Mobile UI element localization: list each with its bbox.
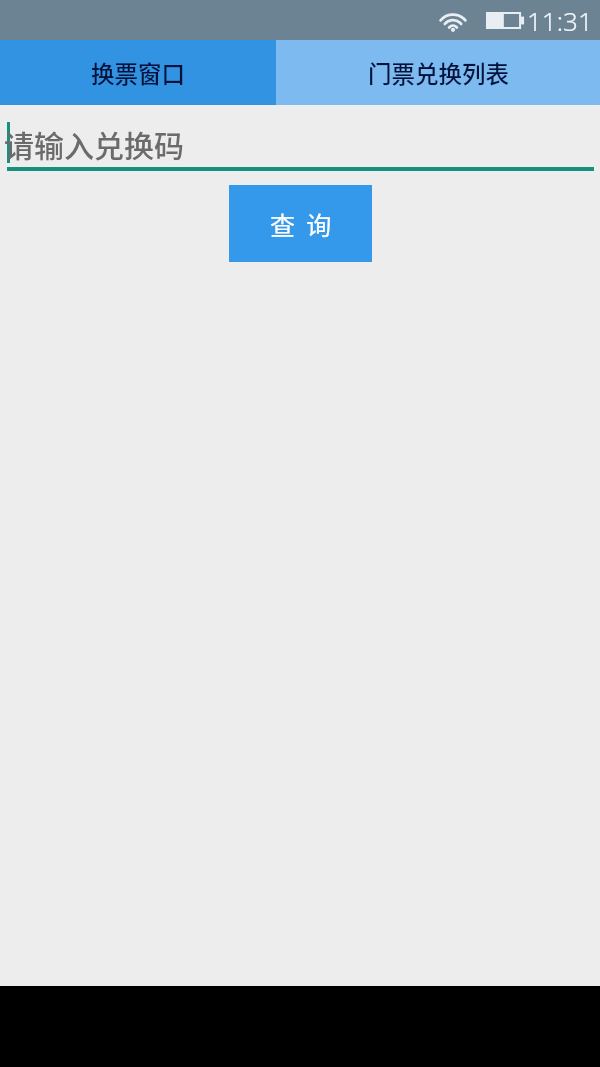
button[interactable]: 门票兑换列表 [276, 40, 600, 105]
other: Battery level [486, 12, 527, 29]
staticText: 换票窗口 [91, 56, 185, 90]
staticText: 查 询 [270, 206, 332, 242]
staticText: 11:31 [527, 3, 593, 38]
button[interactable]: 查 询 [229, 185, 372, 262]
button[interactable]: 请输入兑换码 [0, 105, 600, 172]
staticText: 门票兑换列表 [368, 56, 509, 90]
staticText: 请输入兑换码 [4, 122, 184, 165]
button[interactable]: 换票窗口 [0, 40, 276, 105]
other: Wi-Fi signal [435, 11, 471, 31]
